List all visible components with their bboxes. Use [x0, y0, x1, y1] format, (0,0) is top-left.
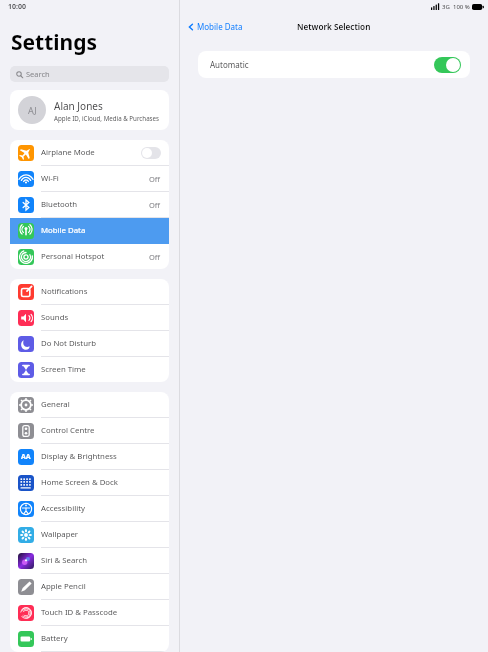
staticText: Wi-Fi: [41, 173, 149, 184]
button[interactable]: Airplane Mode: [10, 140, 169, 166]
staticText: General: [41, 399, 161, 410]
staticText: Display & Brightness: [41, 451, 161, 462]
staticText: Apple Pencil: [41, 581, 161, 592]
staticText: Search: [26, 69, 50, 79]
button[interactable]: AJ: [10, 90, 169, 130]
button[interactable]: Siri & Search: [10, 548, 169, 574]
button[interactable]: Automatic: [198, 51, 470, 78]
button[interactable]: Wallpaper: [10, 522, 169, 548]
staticText: Bluetooth: [41, 199, 149, 210]
button[interactable]: General: [10, 392, 169, 418]
button[interactable]: Personal Hotspot: [10, 244, 169, 269]
staticText: Apple ID, iCloud, Media & Purchases: [54, 114, 160, 122]
button[interactable]: Mobile Data: [10, 218, 169, 244]
button[interactable]: Search: [10, 66, 169, 82]
button[interactable]: Do Not Disturb: [10, 331, 169, 357]
staticText: Automatic: [210, 59, 434, 70]
staticText: Airplane Mode: [41, 147, 141, 158]
staticText: Off: [149, 252, 161, 262]
staticText: Do Not Disturb: [41, 338, 161, 349]
button[interactable]: Wi-Fi: [10, 166, 169, 192]
staticText: Home Screen & Dock: [41, 477, 161, 488]
staticText: Alan Jones: [54, 99, 103, 113]
button[interactable]: Screen Time: [10, 357, 169, 382]
button[interactable]: AA: [10, 444, 169, 470]
button[interactable]: Airplane Mode toggle: [141, 147, 161, 159]
button[interactable]: Home Screen & Dock: [10, 470, 169, 496]
staticText: AJ: [28, 104, 37, 116]
button[interactable]: Sounds: [10, 305, 169, 331]
staticText: Notifications: [41, 286, 161, 297]
staticText: Wallpaper: [41, 529, 161, 540]
button[interactable]: Automatic network selection toggle: [434, 57, 461, 73]
button[interactable]: Control Centre: [10, 418, 169, 444]
staticText: 3G: [442, 3, 450, 11]
button[interactable]: Battery: [10, 626, 169, 652]
button[interactable]: Mobile Data: [185, 18, 245, 35]
staticText: Off: [149, 174, 161, 184]
staticText: Mobile Data: [41, 225, 161, 236]
staticText: Off: [149, 200, 161, 210]
staticText: Accessibility: [41, 503, 161, 514]
staticText: Touch ID & Passcode: [41, 607, 161, 618]
staticText: Personal Hotspot: [41, 251, 149, 262]
staticText: 10:00: [8, 2, 26, 12]
staticText: Mobile Data: [197, 21, 243, 32]
staticText: Network Selection: [297, 21, 371, 32]
staticText: Battery: [41, 633, 161, 644]
staticText: Screen Time: [41, 364, 161, 375]
staticText: Settings: [11, 28, 98, 57]
staticText: Siri & Search: [41, 555, 161, 566]
button[interactable]: Touch ID & Passcode: [10, 600, 169, 626]
button[interactable]: Apple Pencil: [10, 574, 169, 600]
staticText: AA: [21, 452, 31, 462]
staticText: Sounds: [41, 312, 161, 323]
button[interactable]: Notifications: [10, 279, 169, 305]
staticText: Control Centre: [41, 425, 161, 436]
button[interactable]: Bluetooth: [10, 192, 169, 218]
staticText: 100 %: [453, 3, 470, 11]
button[interactable]: Accessibility: [10, 496, 169, 522]
